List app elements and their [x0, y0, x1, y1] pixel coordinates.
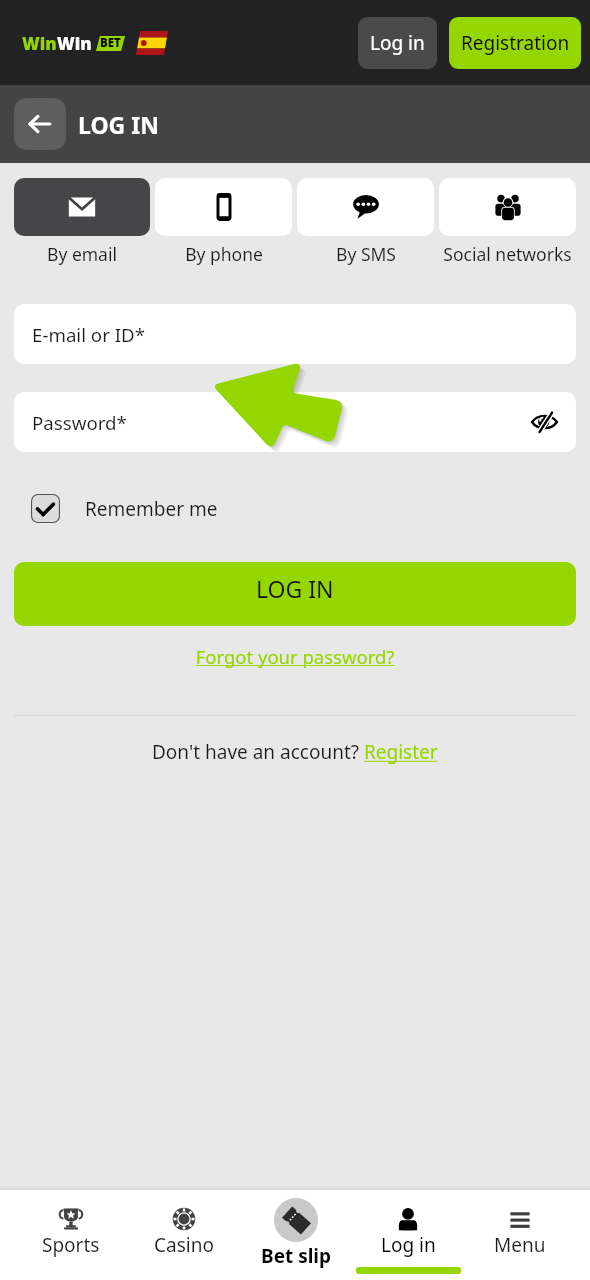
button[interactable]: Forgot your password?: [0, 644, 590, 669]
staticText: Log in: [381, 1232, 436, 1258]
staticText: Win: [22, 32, 57, 55]
button[interactable]: Casino: [127, 1186, 240, 1280]
button[interactable]: Social networks: [439, 178, 576, 266]
button[interactable]: By email: [14, 178, 150, 266]
staticText: Menu: [494, 1232, 546, 1258]
button[interactable]: Log in: [358, 17, 437, 69]
staticText: Sports: [42, 1232, 100, 1258]
staticText: BET: [100, 35, 121, 51]
staticText: By phone: [185, 242, 263, 266]
button[interactable]: Log in: [352, 1186, 464, 1280]
button[interactable]: By SMS: [297, 178, 434, 266]
button[interactable]: E-mail or ID*: [14, 304, 576, 364]
button[interactable]: By phone: [155, 178, 292, 266]
button[interactable]: Remember me: [31, 494, 218, 523]
button[interactable]: Registration: [449, 17, 581, 69]
button[interactable]: Menu: [464, 1186, 576, 1280]
button[interactable]: Back: [14, 98, 66, 150]
staticText: By SMS: [336, 242, 396, 266]
staticText: Registration: [461, 30, 570, 56]
button[interactable]: Show password: [526, 404, 562, 440]
button[interactable]: Bet slip: [240, 1186, 352, 1280]
staticText: LOG IN: [78, 109, 159, 140]
staticText: Casino: [154, 1232, 214, 1258]
staticText: Remember me: [85, 496, 218, 522]
staticText: LOG IN: [256, 573, 334, 604]
button[interactable]: Register: [364, 739, 438, 765]
button[interactable]: LOG IN: [14, 562, 576, 626]
staticText: E-mail or ID*: [32, 322, 146, 347]
staticText: Win: [57, 32, 92, 55]
button[interactable]: Sports: [14, 1186, 127, 1280]
staticText: Password*: [32, 410, 127, 435]
button[interactable]: Password*: [14, 392, 576, 452]
staticText: By email: [47, 242, 117, 266]
staticText: Bet slip: [261, 1243, 332, 1269]
staticText: Don't have an account?: [152, 739, 364, 765]
staticText: Social networks: [443, 242, 572, 266]
staticText: Log in: [370, 30, 425, 56]
